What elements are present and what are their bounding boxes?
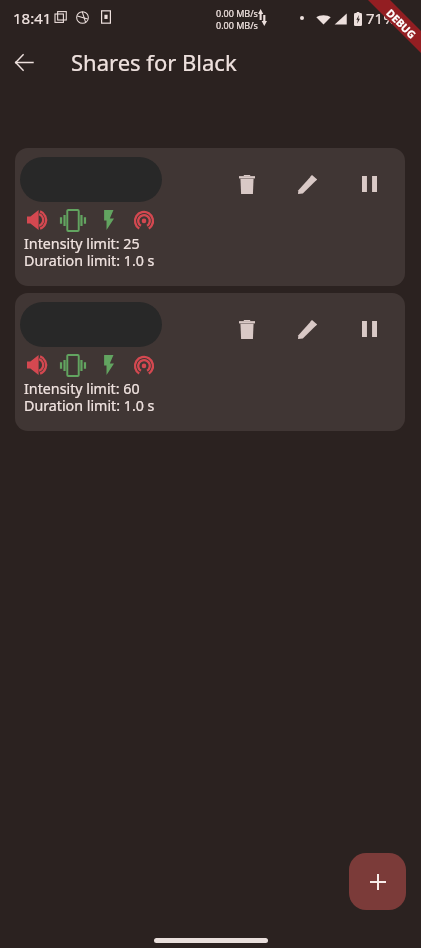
button[interactable]: Pause <box>349 309 389 349</box>
staticText: Duration limit: 1.0 s <box>24 396 155 415</box>
button[interactable]: Delete <box>227 309 267 349</box>
staticText: Duration limit: 1.0 s <box>24 251 155 270</box>
staticText: Intensity limit: 60 <box>24 379 140 398</box>
staticText: 71% <box>366 8 396 28</box>
button[interactable]: Edit <box>288 309 328 349</box>
button[interactable]: Add share <box>349 853 406 910</box>
staticText: Intensity limit: 25 <box>24 234 140 253</box>
button[interactable]: Delete <box>15 293 405 431</box>
staticText: 0.00 MB/s <box>216 7 258 19</box>
button[interactable]: Delete <box>15 148 405 286</box>
button[interactable]: Pause <box>349 164 389 204</box>
button[interactable]: Delete <box>227 164 267 204</box>
staticText: Shares for Black <box>71 47 237 77</box>
button[interactable]: Edit <box>288 164 328 204</box>
staticText: 0.00 MB/s <box>216 19 258 31</box>
button[interactable]: Back <box>4 42 44 82</box>
staticText: 18:41 <box>13 8 52 28</box>
staticText: DEBUG <box>383 6 420 42</box>
